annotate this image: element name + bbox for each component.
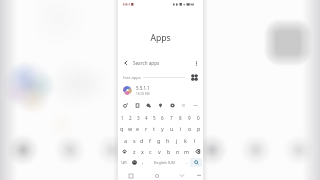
button[interactable]: m — [182, 146, 191, 157]
staticText: c — [149, 148, 152, 155]
staticText: n — [176, 148, 180, 155]
button[interactable]: e — [134, 123, 142, 134]
button[interactable]: Stickers — [122, 102, 129, 109]
button[interactable]: Settings — [169, 102, 176, 109]
button[interactable]: 2 — [126, 113, 134, 123]
button[interactable]: g — [154, 134, 163, 146]
button[interactable]: Grid view — [188, 72, 200, 83]
button[interactable]: Backspace — [191, 146, 202, 157]
button[interactable]: o — [185, 123, 194, 134]
button[interactable]: v — [155, 146, 164, 157]
staticText: 4 — [145, 115, 148, 121]
button[interactable]: x — [138, 146, 146, 157]
button[interactable]: . — [183, 157, 190, 168]
other: Back — [123, 60, 129, 66]
button[interactable]: j — [172, 134, 181, 146]
staticText: Search apps — [133, 60, 160, 66]
button[interactable]: Back — [169, 169, 194, 180]
staticText: v — [158, 148, 161, 155]
button[interactable]: Shift — [119, 146, 130, 157]
staticText: m — [184, 148, 190, 155]
button[interactable]: 4 — [142, 113, 150, 123]
button[interactable]: 0 — [194, 113, 203, 123]
staticText: d — [140, 137, 144, 144]
button[interactable]: l — [190, 134, 199, 146]
button[interactable]: 6 — [158, 113, 167, 123]
staticText: . — [186, 159, 188, 166]
button[interactable]: 3 — [134, 113, 142, 123]
button[interactable]: Hide keyboard — [194, 169, 203, 180]
staticText: z — [133, 148, 136, 155]
staticText: !#1 — [121, 160, 128, 166]
button[interactable]: w — [126, 123, 134, 134]
staticText: 5 — [153, 115, 156, 121]
button[interactable]: Modes — [180, 102, 187, 109]
button[interactable]: Emoji — [130, 157, 139, 168]
button[interactable]: !#1 — [119, 157, 130, 168]
button[interactable]: b — [164, 146, 173, 157]
staticText: i — [180, 125, 182, 132]
button[interactable]: c — [146, 146, 155, 157]
staticText: e — [136, 125, 140, 132]
staticText: s — [133, 137, 136, 144]
button[interactable]: Translate — [145, 102, 152, 109]
staticText: h — [166, 137, 170, 144]
button[interactable]: p — [194, 123, 203, 134]
button[interactable]: 9 — [185, 113, 194, 123]
button[interactable]: n — [173, 146, 182, 157]
staticText: 8 — [179, 115, 182, 121]
button[interactable]: 5 — [150, 113, 158, 123]
staticText: 9 — [188, 115, 191, 121]
staticText: 2 — [129, 115, 132, 121]
button[interactable]: t — [150, 123, 158, 134]
staticText: b — [167, 148, 171, 155]
button[interactable]: , — [139, 157, 146, 168]
staticText: a — [124, 137, 128, 144]
staticText: 0 — [197, 115, 200, 121]
staticText: p — [197, 125, 201, 132]
staticText: r — [145, 125, 148, 132]
button[interactable]: f — [146, 134, 154, 146]
staticText: English (US) — [154, 160, 176, 165]
staticText: o — [188, 125, 192, 132]
staticText: 3 — [137, 115, 140, 121]
staticText: u — [170, 125, 174, 132]
staticText: 5.5.1.1 — [136, 85, 150, 91]
button[interactable]: a — [122, 134, 130, 146]
button[interactable]: i — [176, 123, 185, 134]
staticText: g — [157, 137, 161, 144]
button[interactable]: 7 — [167, 113, 176, 123]
staticText: j — [176, 137, 178, 144]
button[interactable]: r — [142, 123, 150, 134]
staticText: 7 — [170, 115, 173, 121]
button[interactable]: English (US) — [146, 157, 183, 168]
staticText: t — [153, 125, 155, 132]
staticText: , — [142, 159, 144, 166]
button[interactable]: 5.5.1.1 — [118, 84, 203, 97]
button[interactable]: 1 — [118, 113, 126, 123]
staticText: w — [128, 125, 133, 132]
button[interactable]: d — [138, 134, 146, 146]
button[interactable]: h — [163, 134, 172, 146]
button[interactable]: Home — [144, 169, 169, 180]
staticText: x — [141, 148, 144, 155]
button[interactable]: Clipboard — [134, 102, 141, 109]
staticText: 1 — [121, 115, 124, 121]
button[interactable]: Search — [190, 158, 202, 167]
button[interactable]: z — [130, 146, 138, 157]
button[interactable]: k — [181, 134, 190, 146]
button[interactable]: Back — [118, 57, 203, 68]
button[interactable]: q — [118, 123, 126, 134]
staticText: 18.28 MB — [136, 92, 150, 96]
staticText: 6 — [161, 115, 164, 121]
button[interactable]: 8 — [176, 113, 185, 123]
staticText: Apps — [118, 32, 203, 44]
button[interactable]: More — [192, 102, 199, 109]
staticText: free apps — [123, 75, 141, 80]
button[interactable]: u — [167, 123, 176, 134]
button[interactable]: s — [130, 134, 138, 146]
button[interactable]: Recents — [118, 169, 144, 180]
button[interactable]: Voice input — [157, 102, 164, 109]
button[interactable]: More options — [192, 59, 200, 67]
button[interactable]: y — [158, 123, 167, 134]
